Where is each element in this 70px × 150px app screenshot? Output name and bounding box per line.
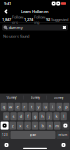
staticText: d xyxy=(20,113,22,119)
button[interactable]: Switch keyboard xyxy=(3,141,10,148)
staticText: v xyxy=(34,123,36,128)
staticText: l xyxy=(63,113,64,119)
staticText: "dummy" xyxy=(6,96,17,99)
staticText: return xyxy=(58,133,67,137)
button[interactable]: 123 xyxy=(1,131,10,139)
button[interactable]: w xyxy=(8,103,14,111)
button[interactable]: Back xyxy=(2,7,10,15)
button[interactable]: m xyxy=(54,122,60,130)
staticText: t xyxy=(31,104,32,109)
staticText: 92 xyxy=(46,17,50,22)
staticText: h xyxy=(41,113,43,119)
staticText: m xyxy=(55,123,59,128)
staticText: o xyxy=(58,104,60,109)
button[interactable]: p xyxy=(63,103,69,111)
staticText: y xyxy=(37,104,39,109)
button[interactable]: z xyxy=(9,122,16,130)
button[interactable]: dummy xyxy=(2,24,68,30)
staticText: Dummy xyxy=(54,96,63,99)
staticText: g xyxy=(34,113,36,119)
button[interactable]: 92 xyxy=(46,16,68,23)
button[interactable]: Dictation xyxy=(60,141,67,148)
staticText: j xyxy=(49,113,50,119)
staticText: c xyxy=(27,123,29,128)
staticText: w xyxy=(9,104,12,109)
staticText: x xyxy=(19,123,21,128)
button[interactable]: r xyxy=(21,103,28,111)
staticText: k xyxy=(55,113,57,119)
button[interactable]: q xyxy=(1,103,7,111)
button[interactable]: 1,847 xyxy=(2,16,24,23)
staticText: n xyxy=(49,123,51,128)
button[interactable]: g xyxy=(32,112,38,120)
button[interactable]: i xyxy=(49,103,55,111)
staticText: dummy xyxy=(9,25,23,30)
button[interactable]: Dummy xyxy=(47,94,70,102)
button[interactable]: e xyxy=(14,103,21,111)
button[interactable]: h xyxy=(39,112,45,120)
button[interactable]: t xyxy=(28,103,35,111)
button[interactable]: Shift xyxy=(1,122,9,130)
staticText: r xyxy=(23,104,25,109)
staticText: 1,847 xyxy=(2,17,11,22)
staticText: b xyxy=(41,123,43,128)
staticText: p xyxy=(65,104,67,109)
button[interactable]: l xyxy=(60,112,67,120)
button[interactable]: u xyxy=(42,103,48,111)
button[interactable]: space xyxy=(10,131,55,139)
staticText: s xyxy=(12,113,14,119)
staticText: Leam Hollanen xyxy=(21,9,49,14)
button[interactable]: k xyxy=(53,112,60,120)
button[interactable]: v xyxy=(32,122,38,130)
staticText: Followers xyxy=(12,14,24,25)
staticText: e xyxy=(17,104,19,109)
button[interactable]: c xyxy=(24,122,31,130)
button[interactable]: n xyxy=(47,122,53,130)
button[interactable]: return xyxy=(56,131,69,139)
button[interactable]: "dummy" xyxy=(0,94,23,102)
staticText: 9:41 xyxy=(4,1,11,6)
staticText: z xyxy=(12,123,14,128)
staticText: 1,274 xyxy=(24,17,33,22)
staticText: Following xyxy=(34,14,46,25)
staticText: f xyxy=(27,113,28,119)
button[interactable]: f xyxy=(25,112,31,120)
button[interactable]: j xyxy=(46,112,52,120)
staticText: 123 xyxy=(2,133,8,137)
button[interactable]: Delete xyxy=(61,122,69,130)
button[interactable]: x xyxy=(17,122,23,130)
staticText: space xyxy=(29,133,36,137)
staticText: i xyxy=(52,104,53,109)
staticText: Suggested xyxy=(51,17,68,22)
staticText: u xyxy=(44,104,46,109)
staticText: dummy xyxy=(30,96,39,99)
button[interactable]: y xyxy=(35,103,42,111)
button[interactable]: b xyxy=(39,122,46,130)
button[interactable]: a xyxy=(3,112,9,120)
staticText: a xyxy=(5,113,7,119)
staticText: q xyxy=(3,104,5,109)
button[interactable]: 1,274 xyxy=(24,16,46,23)
button[interactable]: o xyxy=(56,103,62,111)
button[interactable]: d xyxy=(17,112,24,120)
staticText: No users found xyxy=(3,33,29,39)
button[interactable]: s xyxy=(10,112,17,120)
button[interactable]: dummy xyxy=(23,94,47,102)
